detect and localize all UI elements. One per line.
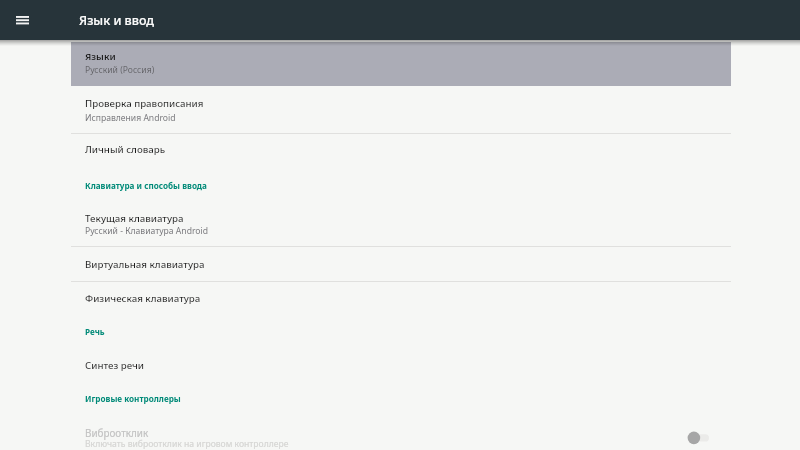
button[interactable]: Виброотклик	[71, 415, 731, 450]
staticText: Языки	[85, 50, 116, 63]
staticText: Русский - Клавиатура Android	[85, 225, 209, 237]
staticText: Язык и ввод	[79, 12, 155, 29]
staticText: Русский (Россия)	[85, 64, 155, 76]
button[interactable]: Языки	[71, 42, 731, 86]
staticText: Виброотклик	[85, 426, 149, 439]
staticText: Исправления Android	[85, 112, 176, 124]
button[interactable]: Синтез речи	[71, 348, 731, 382]
staticText: Синтез речи	[85, 359, 145, 372]
button[interactable]: Личный словарь	[71, 134, 731, 168]
staticText: Клавиатура и способы ввода	[85, 180, 207, 191]
button[interactable]: Включить виброотклик	[679, 421, 719, 450]
button[interactable]: Текущая клавиатура	[71, 202, 731, 246]
staticText: Физическая клавиатура	[85, 292, 201, 305]
staticText: Включать виброотклик на игровом контролл…	[85, 438, 289, 450]
button[interactable]: Проверка правописания	[71, 86, 731, 134]
button[interactable]: Физическая клавиатура	[71, 282, 731, 316]
staticText: Личный словарь	[85, 143, 166, 156]
staticText: Речь	[85, 326, 105, 337]
staticText: Виртуальная клавиатура	[85, 258, 205, 271]
button[interactable]: Открыть меню навигации	[8, 6, 37, 35]
button[interactable]: Виртуальная клавиатура	[71, 247, 731, 281]
staticText: Проверка правописания	[85, 97, 204, 110]
staticText: Игровые контроллеры	[85, 393, 181, 404]
staticText: Текущая клавиатура	[85, 212, 184, 225]
